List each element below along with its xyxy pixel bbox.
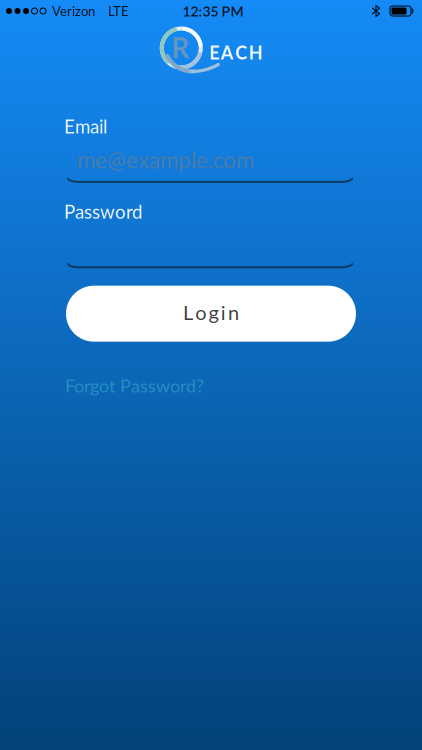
button[interactable]: Forgot Password? (65, 375, 204, 396)
staticText: C (235, 42, 247, 63)
button[interactable]: L (66, 286, 356, 342)
staticText: L (183, 300, 193, 324)
staticText: Verizon (52, 3, 95, 19)
staticText: A (221, 42, 234, 63)
staticText: E (209, 42, 219, 63)
staticText: g (208, 300, 218, 324)
staticText: Email (64, 115, 107, 137)
staticText: Forgot Password? (65, 375, 204, 396)
staticText: o (195, 300, 206, 324)
staticText: R (171, 31, 189, 64)
staticText: n (228, 300, 239, 324)
staticText: me@example.com (77, 146, 254, 173)
staticText: LTE (108, 3, 129, 19)
staticText: 12:35 PM (182, 3, 243, 19)
staticText: i (221, 300, 226, 324)
staticText: Password (64, 200, 142, 223)
staticText: H (249, 42, 263, 63)
